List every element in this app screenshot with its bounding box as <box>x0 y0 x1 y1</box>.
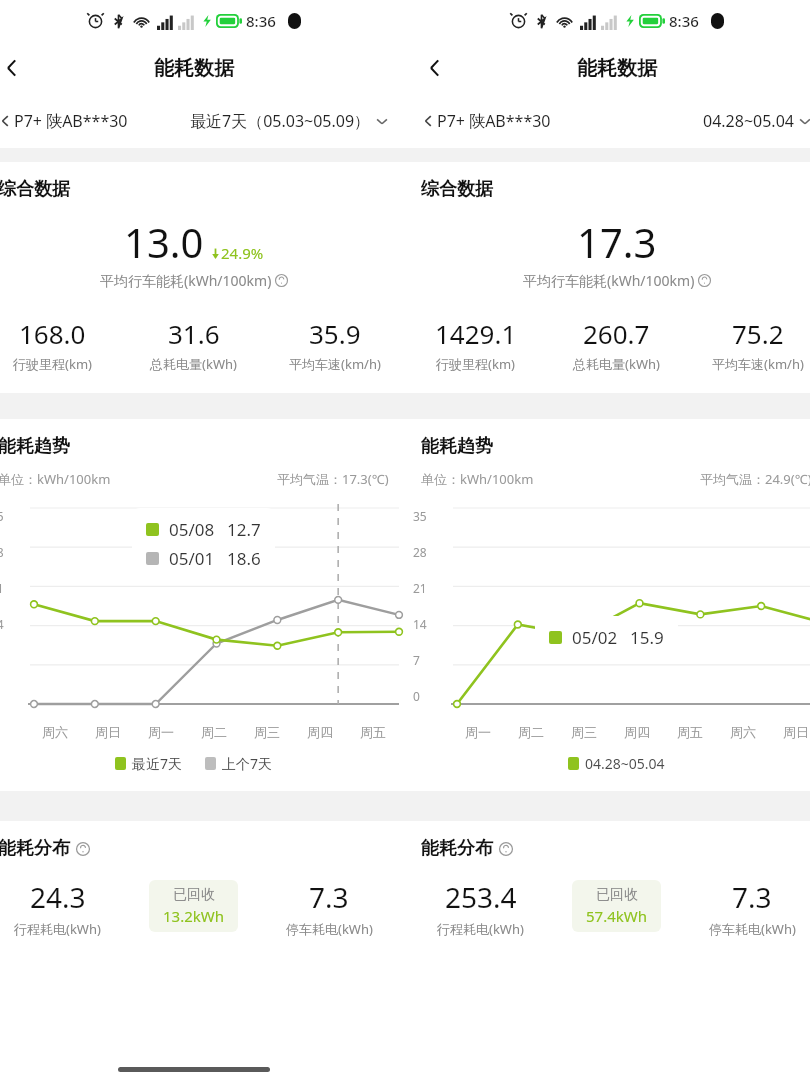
button[interactable]: 168.0 <box>0 316 123 373</box>
staticText: 行程耗电(kWh) <box>14 920 101 938</box>
staticText: 停车耗电(kWh) <box>709 920 796 938</box>
staticText: 周日 <box>95 724 121 740</box>
staticText: 13.0 <box>124 215 204 269</box>
button[interactable]: P7+ 陕AB***30 <box>421 110 551 132</box>
button[interactable]: Back <box>0 48 32 88</box>
staticText: 周六 <box>730 724 756 740</box>
staticText: 能耗数据 <box>154 56 234 81</box>
staticText: 综合数据 <box>0 178 70 201</box>
staticText: 35 <box>0 508 4 524</box>
staticText: 平均车速(km/h) <box>712 355 804 373</box>
button[interactable]: 260.7 <box>546 316 687 373</box>
button[interactable]: 04.28~05.04 <box>703 110 810 132</box>
staticText: 上个7天 <box>222 754 273 773</box>
staticText: 24.9% <box>221 243 264 263</box>
staticText: 周一 <box>148 724 174 740</box>
staticText: 260.7 <box>583 316 650 351</box>
staticText: 周二 <box>518 724 544 740</box>
staticText: 综合数据 <box>421 178 493 201</box>
staticText: 75.2 <box>732 316 784 351</box>
staticText: 行驶里程(km) <box>13 355 92 373</box>
staticText: 04.28~05.04 <box>585 754 665 773</box>
button[interactable]: 最近7天 <box>115 754 183 773</box>
staticText: 05/01 <box>169 547 215 570</box>
staticText: 05/02 <box>572 626 618 649</box>
staticText: 行程耗电(kWh) <box>437 920 524 938</box>
staticText: 周一 <box>465 724 491 740</box>
staticText: 28 <box>413 544 427 560</box>
staticText: 总耗电量(kWh) <box>150 355 237 373</box>
staticText: 平均行车能耗(kWh/100km) <box>523 271 695 290</box>
staticText: 周四 <box>624 724 650 740</box>
staticText: 能耗分布 <box>0 837 70 860</box>
button[interactable]: 能耗分布 <box>0 837 90 860</box>
staticText: 31.6 <box>168 316 220 351</box>
staticText: 平均气温：24.9(℃) <box>700 470 810 488</box>
staticText: 24.3 <box>30 878 86 916</box>
button[interactable]: 最近7天（05.03~05.09） <box>190 110 389 132</box>
staticText: 35.9 <box>309 316 361 351</box>
staticText: 停车耗电(kWh) <box>286 920 373 938</box>
button[interactable]: 04.28~05.04 <box>568 754 665 773</box>
staticText: 周日 <box>783 724 809 740</box>
staticText: 1429.1 <box>435 316 517 351</box>
staticText: 周五 <box>360 724 386 740</box>
staticText: 18.6 <box>227 547 261 570</box>
button[interactable]: 能耗分布 <box>421 837 513 860</box>
staticText: P7+ 陕AB***30 <box>437 110 551 132</box>
staticText: 周二 <box>201 724 227 740</box>
staticText: 周三 <box>571 724 597 740</box>
staticText: 35 <box>413 508 427 524</box>
staticText: 最近7天 <box>132 754 183 773</box>
staticText: 平均气温：17.3(℃) <box>277 470 389 488</box>
staticText: 28 <box>0 544 4 560</box>
staticText: 7 <box>413 652 420 668</box>
staticText: 能耗数据 <box>577 56 657 81</box>
button[interactable]: 说明 <box>698 274 711 287</box>
staticText: 能耗趋势 <box>0 435 70 458</box>
staticText: 12.7 <box>227 518 261 541</box>
staticText: 15.9 <box>630 626 664 649</box>
staticText: 21 <box>413 580 427 596</box>
staticText: 最近7天（05.03~05.09） <box>190 110 371 132</box>
staticText: 7.3 <box>309 878 349 916</box>
staticText: 周四 <box>307 724 333 740</box>
staticText: 周六 <box>42 724 68 740</box>
staticText: 168.0 <box>19 316 86 351</box>
staticText: 平均行车能耗(kWh/100km) <box>100 271 272 290</box>
button[interactable]: 说明 <box>275 274 288 287</box>
staticText: 周三 <box>254 724 280 740</box>
staticText: 253.4 <box>445 878 517 916</box>
staticText: 已回收 <box>173 886 215 904</box>
staticText: 单位：kWh/100km <box>0 470 111 488</box>
button[interactable]: 35.9 <box>264 316 405 373</box>
staticText: 8:36 <box>669 11 699 31</box>
button[interactable]: 上个7天 <box>205 754 273 773</box>
button[interactable]: P7+ 陕AB***30 <box>0 110 128 132</box>
staticText: 04.28~05.04 <box>703 110 794 132</box>
button[interactable]: 31.6 <box>123 316 264 373</box>
staticText: 21 <box>0 580 4 596</box>
button[interactable]: 75.2 <box>687 316 810 373</box>
staticText: 05/08 <box>169 518 215 541</box>
staticText: 能耗趋势 <box>421 435 493 458</box>
staticText: 0 <box>413 688 420 704</box>
staticText: 14 <box>413 616 427 632</box>
staticText: 14 <box>0 616 4 632</box>
staticText: 周五 <box>677 724 703 740</box>
staticText: 已回收 <box>596 886 638 904</box>
staticText: P7+ 陕AB***30 <box>14 110 128 132</box>
staticText: 平均车速(km/h) <box>289 355 381 373</box>
staticText: 行驶里程(km) <box>436 355 515 373</box>
staticText: 单位：kWh/100km <box>421 470 534 488</box>
staticText: 13.2kWh <box>163 906 224 926</box>
staticText: 总耗电量(kWh) <box>573 355 660 373</box>
staticText: 17.3 <box>577 215 657 269</box>
button[interactable]: Back <box>415 48 455 88</box>
staticText: 57.4kWh <box>586 906 647 926</box>
staticText: 7.3 <box>732 878 772 916</box>
staticText: 能耗分布 <box>421 837 493 860</box>
staticText: 8:36 <box>246 11 276 31</box>
button[interactable]: 1429.1 <box>405 316 546 373</box>
